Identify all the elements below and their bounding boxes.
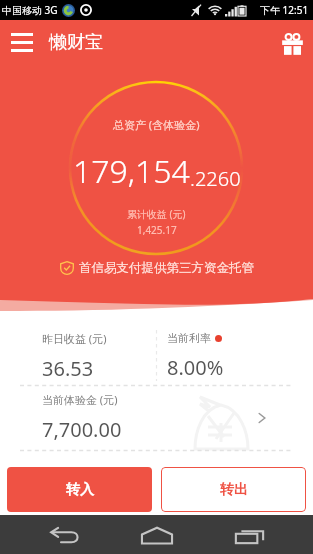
button[interactable]: 转出 [161,467,306,512]
staticText: 8.00% [167,354,224,381]
staticText: 懒财宝 [49,31,103,54]
staticText: 当前体验金 (元) [42,392,118,407]
button[interactable]: 昨日收益 (元) [0,322,156,385]
staticText: 当前利率 [167,331,211,345]
staticText: 7,700.00 [42,416,122,443]
staticText: 1,425.17 [137,223,177,237]
button[interactable]: 当前利率 [156,322,313,385]
staticText: 昨日收益 (元) [42,331,107,346]
staticText: 36.53 [42,355,94,382]
other: Menu [11,33,33,52]
staticText: .2260 [190,165,241,192]
button[interactable]: Gift [281,33,304,56]
button[interactable]: Back [36,517,92,553]
staticText: 转入 [66,481,94,499]
button[interactable]: 转入 [7,467,152,512]
button[interactable]: Home [129,517,185,553]
staticText: 累计收益 (元) [127,207,186,221]
staticText: 中国移动 3G [2,3,58,17]
staticText: 下午 12:51 [260,3,309,17]
button[interactable]: Recents [221,517,277,553]
button[interactable]: 当前体验金 (元) [0,385,313,450]
staticText: 总资产 (含体验金) [113,117,200,132]
button[interactable]: Menu [11,31,103,54]
staticText: 首信易支付提供第三方资金托管 [79,260,254,276]
staticText: 179,154 [73,149,190,193]
staticText: 转出 [220,481,248,499]
